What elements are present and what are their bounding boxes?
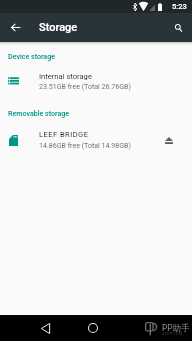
button[interactable]: Home [73,315,113,341]
button[interactable]: Recent apps [122,315,162,341]
button[interactable]: Eject [160,132,177,149]
staticText: Removable storage [8,109,70,117]
button[interactable]: Internal storage [0,68,192,93]
staticText: Device storage [8,52,55,60]
staticText: Internal storage [39,72,92,81]
button[interactable]: LEEF BRIDGE [0,126,192,151]
button[interactable]: Navigate up [4,16,26,38]
button[interactable]: Search [167,17,189,39]
staticText: 14.86GB free (Total 14.98GB) [39,141,131,149]
staticText: PP助手 [162,323,190,334]
staticText: Storage [39,21,78,34]
staticText: LEEF BRIDGE [39,130,89,139]
button[interactable]: Back [25,315,65,341]
staticText: 23.51GB free (Total 26.76GB) [39,82,131,90]
staticText: 5:23 [172,2,187,11]
staticText: 25PP.COM [162,332,183,336]
